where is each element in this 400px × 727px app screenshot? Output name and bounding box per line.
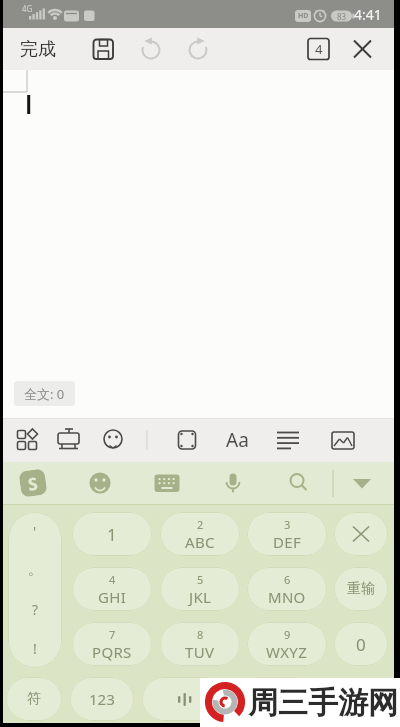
staticText: HD (298, 11, 309, 21)
staticText: ! (33, 639, 37, 658)
staticText: 7 (109, 627, 116, 642)
staticText: DEF (273, 532, 301, 552)
staticText: ABC (185, 532, 215, 552)
staticText: WXYZ (266, 642, 308, 662)
staticText: JKL (189, 587, 212, 607)
staticText: 2 (197, 517, 204, 532)
staticText: 6 (284, 572, 291, 587)
staticText: 123 (89, 689, 115, 709)
staticText: ' (33, 522, 37, 541)
staticText: 重输 (347, 580, 375, 598)
staticText: 1 (107, 523, 117, 546)
staticText: 符 (27, 690, 41, 708)
staticText: 完成 (20, 38, 56, 61)
staticText: 。 (28, 561, 42, 579)
staticText: 9 (284, 627, 291, 642)
staticText: 4 (315, 40, 323, 58)
staticText: PQRS (92, 642, 132, 662)
staticText: 4G (22, 3, 33, 14)
staticText: 3 (284, 517, 291, 532)
staticText: 5 (197, 572, 204, 587)
staticText: 8 (197, 627, 204, 642)
staticText: MNO (268, 587, 306, 607)
staticText: 83 (337, 11, 347, 22)
staticText: 周三手游网 (248, 684, 398, 722)
staticText: 全文: 0 (24, 385, 65, 403)
staticText: Aa (226, 427, 249, 453)
staticText: 4:41 (354, 5, 382, 24)
staticText: TUV (185, 642, 215, 662)
staticText: 0 (356, 633, 366, 656)
staticText: ? (32, 600, 39, 619)
staticText: GHI (98, 587, 127, 607)
staticText: 4 (109, 572, 116, 587)
staticText: S (26, 471, 40, 496)
